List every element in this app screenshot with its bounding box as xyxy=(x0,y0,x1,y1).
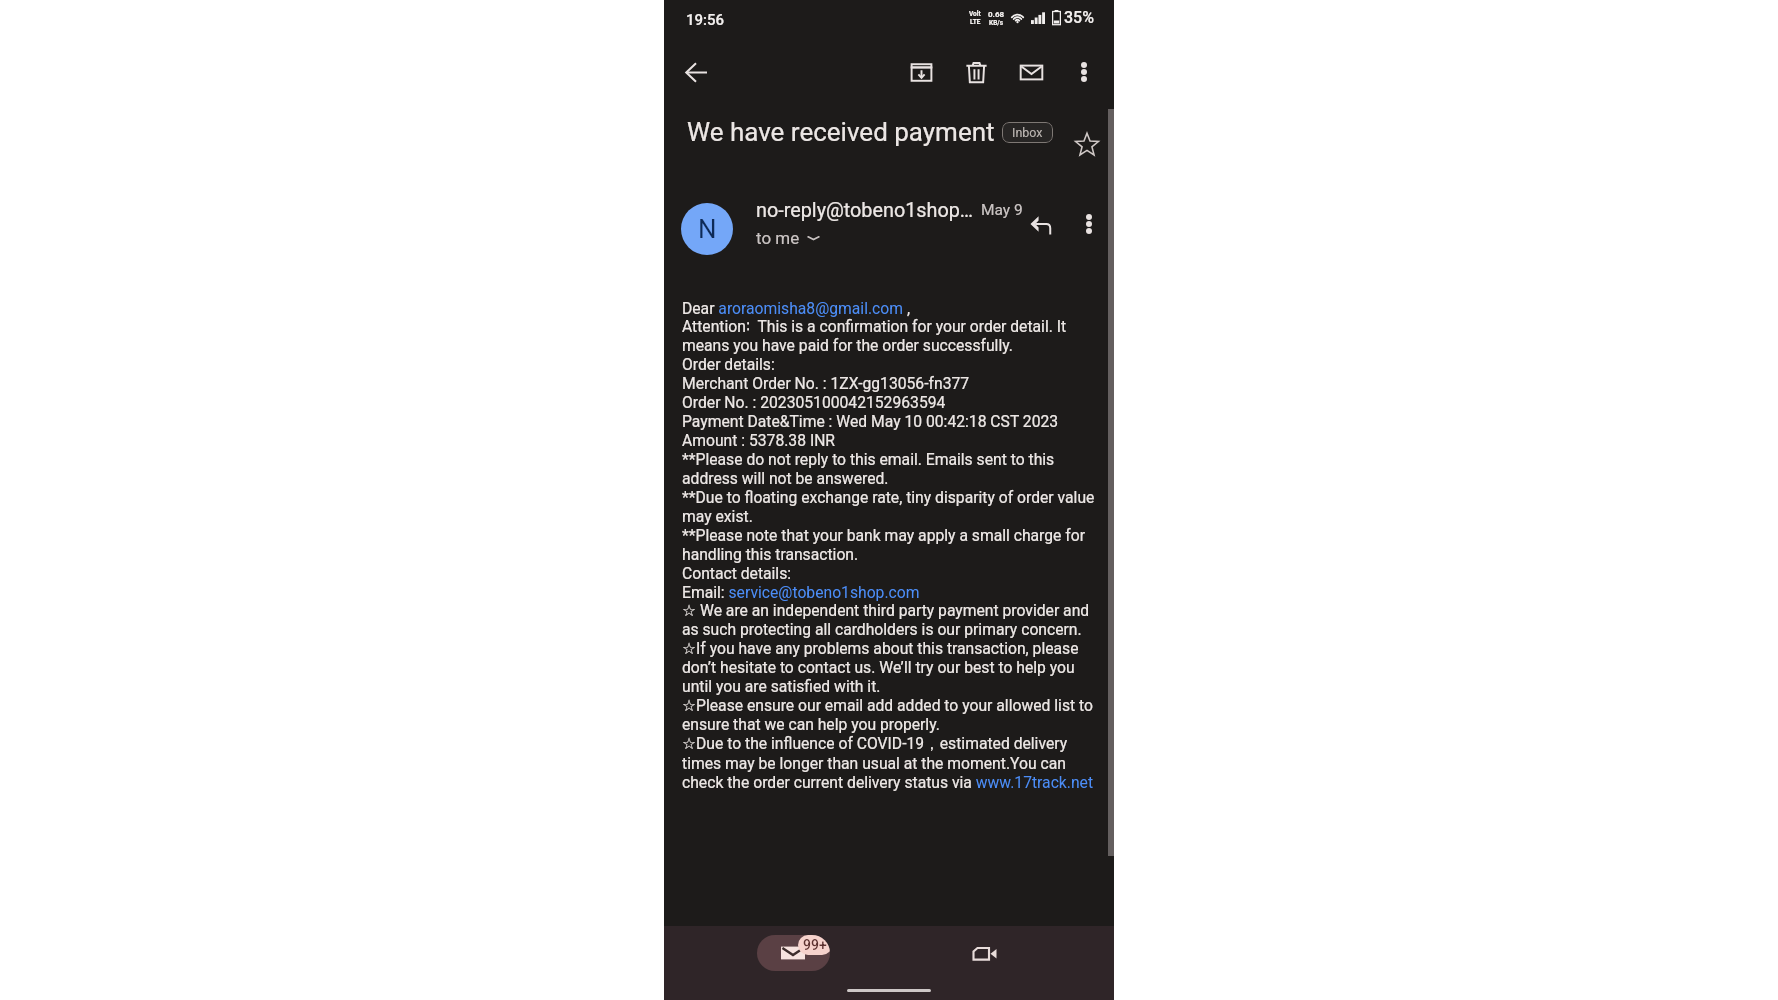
staticText: N xyxy=(698,214,717,244)
button[interactable]: Mark as unread xyxy=(1009,50,1053,94)
staticText: 19:56 xyxy=(686,11,725,29)
button[interactable]: Reply xyxy=(1019,203,1063,247)
button[interactable]: More options xyxy=(1067,202,1111,246)
staticText: to me xyxy=(756,228,800,248)
button[interactable]: to me xyxy=(756,228,821,248)
staticText: ☆If you have any problems about this tra… xyxy=(682,639,1096,696)
staticText: no-reply@tobeno1shop… xyxy=(756,199,974,222)
staticText: 0.68 xyxy=(988,10,1005,19)
button[interactable]: Mail xyxy=(757,935,830,971)
staticText: Attention∶ This is a confirmation for yo… xyxy=(682,317,1096,583)
staticText: May 9 xyxy=(981,201,1023,219)
button[interactable]: Back xyxy=(674,50,718,94)
button[interactable]: Meet xyxy=(948,935,1021,971)
button[interactable]: Star xyxy=(1066,123,1108,165)
staticText: ☆Due to the influence of COVID-19，estima… xyxy=(682,734,1096,792)
staticText: ☆Please ensure our email add added to yo… xyxy=(682,696,1096,734)
staticText: Dear aroraomisha8@gmail.com , xyxy=(682,299,910,317)
staticText: Inbox xyxy=(1012,125,1043,140)
staticText: 35% xyxy=(1064,8,1094,27)
staticText: We have received payment xyxy=(687,117,995,147)
staticText: LTE xyxy=(970,18,981,26)
staticText: KB/s xyxy=(989,19,1004,27)
button[interactable]: Inbox xyxy=(1002,122,1053,143)
staticText: Email: service@tobeno1shop.com xyxy=(682,583,920,601)
button[interactable]: More options xyxy=(1062,50,1106,94)
staticText: 99+ xyxy=(803,937,827,953)
staticText: Volt xyxy=(969,10,981,18)
button[interactable]: N xyxy=(681,203,733,255)
button[interactable]: Archive xyxy=(899,50,943,94)
staticText: ☆ We are an independent third party paym… xyxy=(682,601,1096,639)
button[interactable]: Delete xyxy=(954,50,998,94)
